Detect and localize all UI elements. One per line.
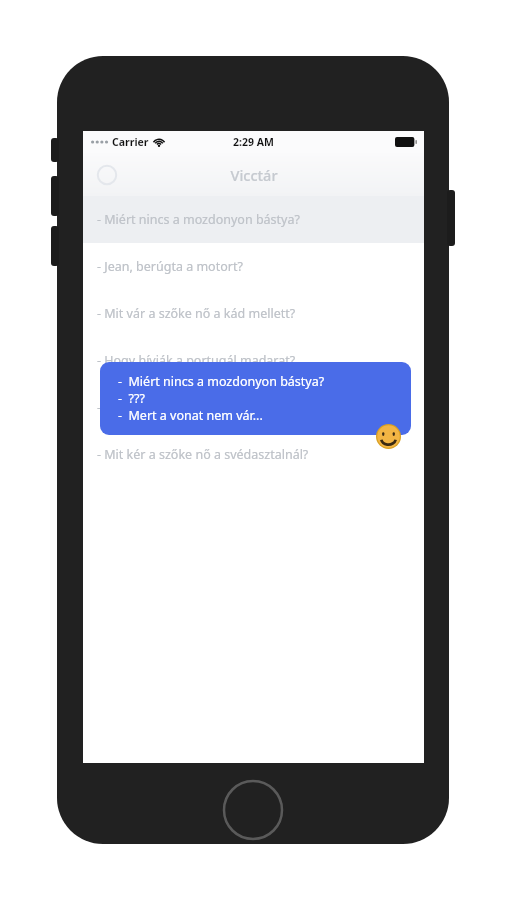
staticText: Carrier	[112, 135, 149, 149]
staticText: - Mit vár a szőke nő a kád mellett?	[97, 305, 296, 322]
button[interactable]: Smiley reaction	[376, 424, 401, 449]
button[interactable]: - Miért nincs a mozdonyon bástya?	[83, 196, 424, 243]
staticText: - Miért nem lehet megbízni a villamban?	[97, 399, 332, 416]
staticText: - ???	[118, 390, 145, 407]
button[interactable]: Home	[222, 779, 284, 841]
staticText: - Mert a vonat nem vár...	[118, 407, 263, 424]
staticText: - Mit kér a szőke nő a svédasztalnál?	[97, 446, 309, 463]
staticText: 2:29 AM	[233, 135, 274, 149]
button[interactable]: - Jean, berúgta a motort?	[83, 243, 424, 290]
staticText: - Miért nincs a mozdonyon bástya?	[118, 373, 325, 390]
staticText: Vicctár	[230, 165, 278, 185]
button[interactable]: - Miért nincs a mozdonyon bástya?	[100, 362, 411, 435]
button[interactable]: - Miért nem lehet megbízni a villamban?	[83, 384, 424, 431]
button[interactable]: Refresh	[95, 163, 119, 187]
staticText: - Hogy hívják a portugál madarat?	[97, 352, 296, 369]
button[interactable]: - Hogy hívják a portugál madarat?	[83, 337, 424, 384]
staticText: - Miért nincs a mozdonyon bástya?	[97, 211, 300, 228]
button[interactable]: - Mit kér a szőke nő a svédasztalnál?	[83, 431, 424, 478]
button[interactable]: - Mit vár a szőke nő a kád mellett?	[83, 290, 424, 337]
staticText: - Jean, berúgta a motort?	[97, 258, 243, 275]
